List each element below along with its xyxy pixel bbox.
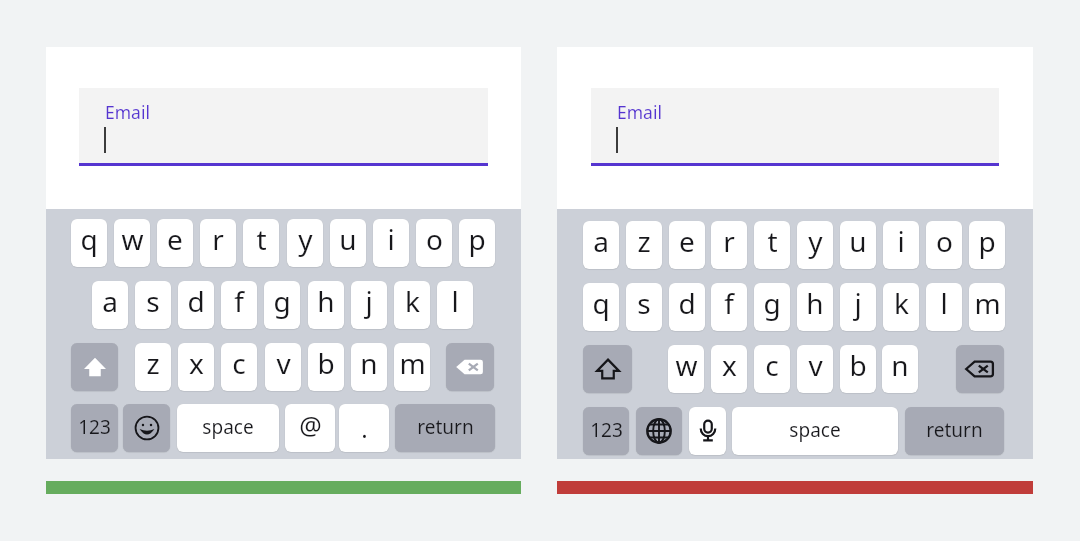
button[interactable]: r — [200, 219, 236, 267]
staticText: r — [723, 222, 735, 260]
staticText: t — [767, 222, 778, 260]
button[interactable]: v — [797, 345, 833, 393]
button[interactable]: 123 — [71, 404, 118, 452]
button[interactable]: . — [339, 404, 389, 452]
button[interactable]: n — [351, 343, 387, 391]
button[interactable]: i — [373, 219, 409, 267]
button[interactable]: d — [669, 283, 705, 331]
button[interactable]: Voice input — [689, 407, 726, 455]
button[interactable]: Emoji — [123, 404, 170, 452]
button[interactable]: y — [797, 221, 833, 269]
staticText: j — [854, 284, 862, 322]
button[interactable]: h — [797, 283, 833, 331]
staticText: e — [167, 220, 183, 258]
staticText: o — [936, 222, 953, 260]
button[interactable]: i — [883, 221, 919, 269]
button[interactable]: u — [840, 221, 876, 269]
button[interactable]: h — [308, 281, 344, 329]
button[interactable]: l — [926, 283, 962, 331]
button[interactable]: m — [969, 283, 1005, 331]
button[interactable]: x — [178, 343, 214, 391]
button[interactable]: Globe / change language — [636, 407, 682, 455]
button[interactable]: k — [883, 283, 919, 331]
button[interactable]: f — [711, 283, 747, 331]
button[interactable]: l — [437, 281, 473, 329]
button[interactable]: b — [840, 345, 876, 393]
staticText: u — [849, 222, 867, 260]
button[interactable]: g — [264, 281, 300, 329]
button[interactable]: z — [135, 343, 171, 391]
button[interactable]: Backspace — [956, 345, 1004, 393]
button[interactable]: v — [265, 343, 301, 391]
button[interactable]: g — [754, 283, 790, 331]
button[interactable]: b — [308, 343, 344, 391]
staticText: m — [399, 344, 426, 382]
button[interactable]: a — [92, 281, 128, 329]
button[interactable]: n — [882, 345, 918, 393]
button[interactable]: j — [840, 283, 876, 331]
staticText: r — [212, 220, 224, 258]
staticText: k — [894, 284, 909, 322]
button[interactable]: c — [754, 345, 790, 393]
staticText: w — [675, 346, 698, 384]
staticText: d — [678, 284, 696, 322]
button[interactable]: space — [732, 407, 898, 455]
button[interactable]: return — [905, 407, 1004, 455]
staticText: h — [806, 284, 824, 322]
button[interactable]: k — [394, 281, 430, 329]
button[interactable]: j — [351, 281, 387, 329]
staticText: s — [146, 282, 160, 320]
button[interactable]: u — [330, 219, 366, 267]
button[interactable]: p — [969, 221, 1005, 269]
staticText: y — [808, 222, 823, 260]
button[interactable]: c — [221, 343, 257, 391]
button[interactable]: Shift — [71, 343, 118, 391]
staticText: space — [789, 417, 841, 443]
staticText: g — [763, 284, 781, 322]
button[interactable]: s — [626, 283, 662, 331]
button[interactable]: 123 — [583, 407, 629, 455]
button[interactable]: q — [71, 219, 107, 267]
button[interactable]: y — [287, 219, 323, 267]
button[interactable]: z — [626, 221, 662, 269]
staticText: b — [317, 344, 335, 382]
staticText: w — [121, 220, 144, 258]
staticText: z — [637, 222, 651, 260]
button[interactable]: o — [416, 219, 452, 267]
staticText: f — [234, 282, 244, 320]
button[interactable]: space — [177, 404, 279, 452]
staticText: @ — [299, 408, 322, 442]
button[interactable]: e — [669, 221, 705, 269]
staticText: x — [189, 344, 204, 382]
button[interactable]: m — [394, 343, 430, 391]
staticText: v — [808, 346, 823, 384]
staticText: n — [891, 346, 909, 384]
button[interactable]: x — [711, 345, 747, 393]
button[interactable]: o — [926, 221, 962, 269]
button[interactable]: w — [668, 345, 704, 393]
button[interactable]: @ — [285, 404, 335, 452]
button[interactable]: Email — [591, 88, 999, 163]
staticText: space — [202, 414, 254, 440]
button[interactable]: a — [583, 221, 619, 269]
staticText: a — [102, 282, 118, 320]
button[interactable]: t — [754, 221, 790, 269]
button[interactable]: r — [711, 221, 747, 269]
button[interactable]: e — [157, 219, 193, 267]
button[interactable]: d — [178, 281, 214, 329]
staticText: Email — [105, 100, 150, 124]
button[interactable]: p — [459, 219, 495, 267]
button[interactable]: Shift — [583, 345, 632, 393]
button[interactable]: s — [135, 281, 171, 329]
button[interactable]: Backspace — [446, 343, 494, 391]
button[interactable]: return — [395, 404, 495, 452]
staticText: m — [974, 284, 1001, 322]
staticText: z — [146, 344, 160, 382]
staticText: p — [978, 222, 996, 260]
staticText: k — [405, 282, 420, 320]
button[interactable]: w — [114, 219, 150, 267]
button[interactable]: t — [243, 219, 279, 267]
button[interactable]: Email — [79, 88, 488, 163]
button[interactable]: q — [583, 283, 619, 331]
button[interactable]: f — [221, 281, 257, 329]
